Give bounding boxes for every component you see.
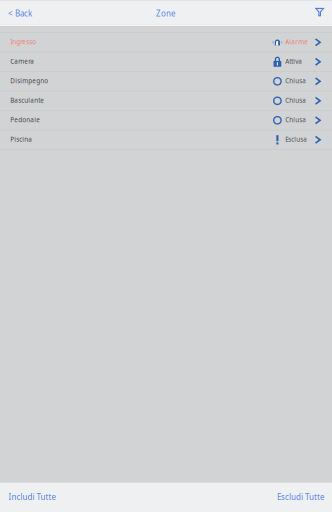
staticText: Piscina <box>10 135 32 143</box>
staticText: Disimpegno <box>10 76 48 85</box>
button[interactable]: Piscina <box>0 130 332 150</box>
staticText: Ingresso <box>10 37 36 46</box>
button[interactable]: Basculante <box>0 91 332 111</box>
staticText: < Back <box>8 8 32 19</box>
staticText: Esclusa <box>285 135 307 143</box>
staticText: Chiusa <box>285 76 306 85</box>
button[interactable]: Escludi Tutte <box>269 482 332 512</box>
button[interactable]: Disimpegno <box>0 72 332 91</box>
button[interactable]: Pedonale <box>0 111 332 130</box>
button[interactable]: Includi Tutte <box>0 482 64 512</box>
button[interactable]: < Back <box>0 0 39 26</box>
button[interactable]: Camera <box>0 52 332 72</box>
staticText: Zone <box>156 8 176 19</box>
staticText: Camera <box>10 57 34 65</box>
staticText: Attiva <box>285 57 302 65</box>
staticText: Chiusa <box>285 96 306 104</box>
staticText: Includi Tutte <box>8 492 56 502</box>
staticText: Basculante <box>10 96 44 104</box>
staticText: Alarme <box>285 37 308 46</box>
button[interactable]: Filter <box>308 0 332 26</box>
staticText: Chiusa <box>285 115 306 124</box>
staticText: Escludi Tutte <box>277 492 325 502</box>
staticText: Pedonale <box>10 115 40 124</box>
button[interactable]: Ingresso <box>0 33 332 52</box>
